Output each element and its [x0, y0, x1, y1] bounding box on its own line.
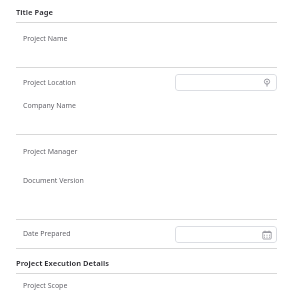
- staticText: Project Scope: [23, 281, 68, 291]
- button[interactable]: Project location: [175, 74, 277, 91]
- staticText: Project Manager: [23, 147, 78, 157]
- button[interactable]: Project Execution Details: [16, 258, 277, 268]
- button[interactable]: Date Prepared: [16, 220, 277, 248]
- button[interactable]: Date prepared: [175, 226, 277, 243]
- button[interactable]: Project Name: [16, 23, 277, 67]
- button[interactable]: Project Manager: [16, 135, 277, 175]
- button[interactable]: Company Name: [16, 97, 277, 134]
- button[interactable]: Title Page: [16, 7, 277, 17]
- staticText: Company Name: [23, 101, 76, 111]
- button[interactable]: Project Scope: [16, 274, 277, 300]
- button[interactable]: Document Version: [16, 175, 277, 219]
- staticText: Project Name: [23, 34, 68, 44]
- button[interactable]: Project Location: [16, 68, 277, 97]
- staticText: Date Prepared: [23, 229, 71, 239]
- staticText: Project Location: [23, 78, 76, 88]
- staticText: Document Version: [23, 176, 84, 186]
